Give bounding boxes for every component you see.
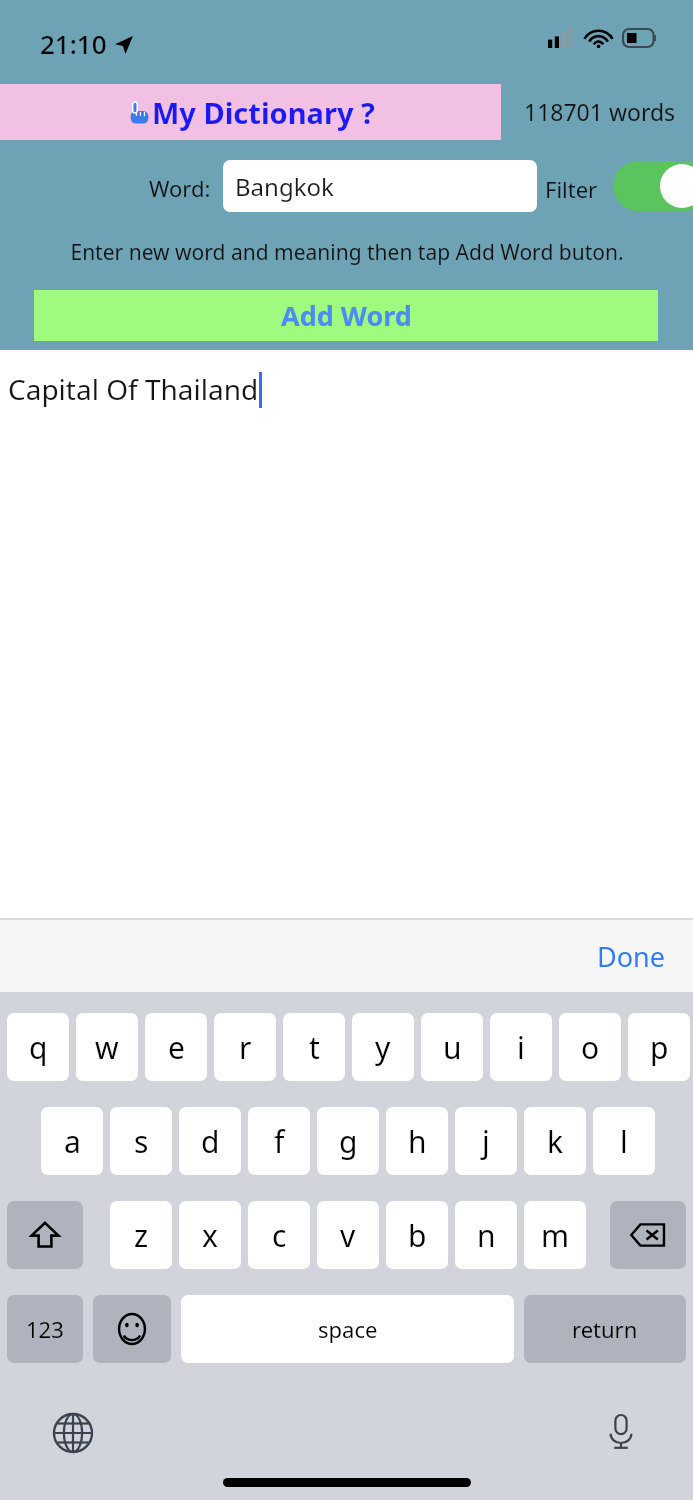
button[interactable]: g	[317, 1107, 379, 1175]
staticText: q	[29, 1027, 48, 1068]
button[interactable]: k	[524, 1107, 586, 1175]
staticText: b	[408, 1215, 427, 1256]
staticText: c	[272, 1215, 287, 1256]
staticText: d	[201, 1121, 220, 1162]
staticText: v	[340, 1215, 356, 1256]
button[interactable]: Backspace	[610, 1201, 686, 1269]
staticText: z	[134, 1215, 149, 1256]
staticText: Add Word	[281, 297, 412, 334]
staticText: return	[572, 1314, 638, 1344]
button[interactable]: Filter toggle	[613, 161, 693, 211]
staticText: l	[620, 1121, 628, 1162]
staticText: r	[239, 1027, 252, 1068]
button[interactable]: Done	[597, 938, 665, 975]
staticText: x	[202, 1215, 218, 1256]
staticText: g	[339, 1121, 358, 1162]
button[interactable]: i	[490, 1013, 552, 1081]
button[interactable]: f	[248, 1107, 310, 1175]
staticText: e	[168, 1027, 185, 1068]
staticText: Done	[597, 938, 665, 975]
button[interactable]: m	[524, 1201, 586, 1269]
staticText: i	[517, 1027, 525, 1068]
staticText: 21:10	[40, 26, 107, 61]
staticText: a	[64, 1121, 81, 1162]
staticText: Filter	[545, 174, 598, 204]
button[interactable]: l	[593, 1107, 655, 1175]
button[interactable]: x	[179, 1201, 241, 1269]
staticText: 118701 words	[524, 96, 676, 127]
button[interactable]: h	[386, 1107, 448, 1175]
staticText: s	[134, 1121, 149, 1162]
button[interactable]: space	[181, 1295, 514, 1363]
button[interactable]: t	[283, 1013, 345, 1081]
button[interactable]: e	[145, 1013, 207, 1081]
button[interactable]: Change keyboard	[50, 1410, 96, 1456]
staticText: Word:	[149, 173, 211, 203]
button[interactable]: c	[248, 1201, 310, 1269]
staticText: space	[318, 1314, 378, 1344]
button[interactable]: d	[179, 1107, 241, 1175]
button[interactable]: Emoji	[93, 1295, 171, 1363]
staticText: n	[477, 1215, 496, 1256]
staticText: w	[95, 1027, 119, 1068]
button[interactable]: b	[386, 1201, 448, 1269]
button[interactable]: q	[7, 1013, 69, 1081]
button[interactable]: v	[317, 1201, 379, 1269]
button[interactable]: s	[110, 1107, 172, 1175]
button[interactable]: y	[352, 1013, 414, 1081]
button[interactable]: j	[455, 1107, 517, 1175]
button[interactable]: z	[110, 1201, 172, 1269]
button[interactable]: a	[41, 1107, 103, 1175]
staticText: 123	[26, 1314, 64, 1344]
button[interactable]: return	[524, 1295, 686, 1363]
staticText: k	[547, 1121, 564, 1162]
staticText: o	[581, 1027, 600, 1068]
staticText: u	[443, 1027, 462, 1068]
staticText: My Dictionary ?	[152, 93, 375, 132]
staticText: p	[650, 1027, 669, 1068]
staticText: m	[541, 1215, 570, 1256]
staticText: Enter new word and meaning then tap Add …	[70, 238, 624, 267]
button[interactable]: w	[76, 1013, 138, 1081]
button[interactable]: My Dictionary ?	[0, 84, 501, 140]
staticText: h	[408, 1121, 427, 1162]
button[interactable]: Bangkok	[223, 160, 537, 212]
staticText: f	[274, 1121, 285, 1162]
button[interactable]: 123	[7, 1295, 83, 1363]
button[interactable]: p	[628, 1013, 690, 1081]
button[interactable]: Shift	[7, 1201, 83, 1269]
staticText: t	[309, 1027, 320, 1068]
staticText: Capital Of Thailand	[8, 370, 259, 408]
staticText: j	[482, 1121, 490, 1162]
button[interactable]: Dictation	[598, 1408, 644, 1454]
button[interactable]: o	[559, 1013, 621, 1081]
button[interactable]: n	[455, 1201, 517, 1269]
staticText: Bangkok	[235, 170, 334, 203]
button[interactable]: r	[214, 1013, 276, 1081]
button[interactable]: u	[421, 1013, 483, 1081]
button[interactable]: Add Word	[34, 290, 658, 341]
staticText: y	[375, 1027, 391, 1068]
